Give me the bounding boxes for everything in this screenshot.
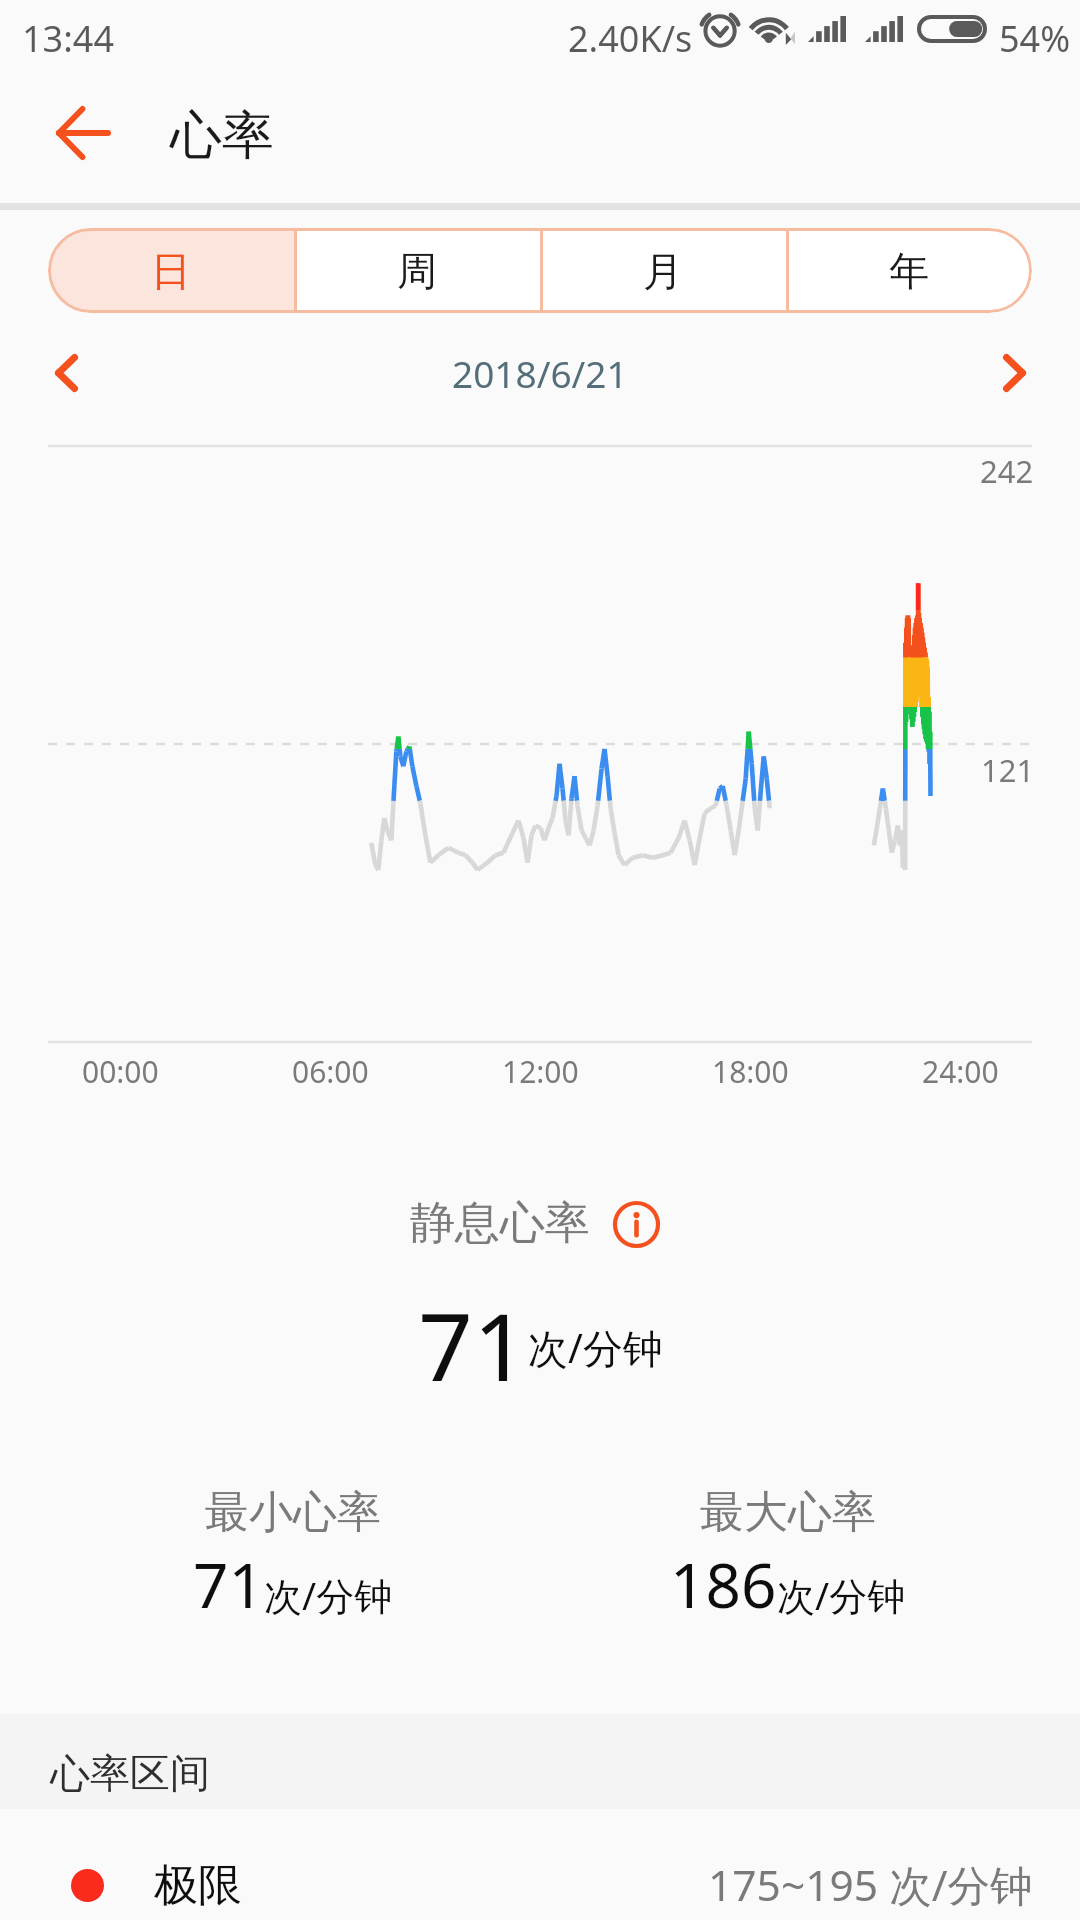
staticText: 最大心率 [700,1485,876,1540]
staticText: 年 [889,246,929,296]
staticText: 心率 [170,103,274,169]
staticText: 06:00 [292,1051,369,1092]
staticText: 次/分钟 [264,1569,393,1621]
staticText: 13:44 [22,14,115,63]
staticText: 最小心率 [205,1485,381,1540]
staticText: 2018/6/21 [452,348,628,398]
button[interactable]: 年 [786,228,1032,313]
staticText: 71 [193,1542,264,1626]
staticText: 月 [643,246,683,296]
staticText: 00:00 [82,1051,159,1092]
button[interactable]: 周 [294,228,540,313]
staticText: 日 [151,246,191,296]
button[interactable]: 月 [540,228,786,313]
staticText: 心率区间 [50,1748,210,1798]
button[interactable]: Previous day [24,331,108,415]
staticText: 2.40K/s [568,14,693,63]
staticText: 24:00 [922,1051,999,1092]
button[interactable]: 日 [48,228,294,313]
staticText: 次/分钟 [528,1320,663,1375]
staticText: 次/分钟 [777,1569,906,1621]
staticText: 18:00 [712,1051,789,1092]
button[interactable]: Back [35,85,131,181]
staticText: 121 [981,749,1035,791]
staticText: 静息心率 [410,1195,590,1252]
staticText: 极限 [154,1858,242,1913]
staticText: 54% [999,14,1071,63]
staticText: 175~195 次/分钟 [708,1856,1033,1914]
staticText: 71 [418,1281,528,1381]
button[interactable]: Info [608,1196,664,1252]
staticText: 242 [980,450,1034,492]
button[interactable]: 极限 [0,1809,1080,1920]
staticText: 周 [397,246,437,296]
staticText: 12:00 [502,1051,579,1092]
button[interactable]: Next day [972,331,1056,415]
staticText: 186 [670,1542,777,1626]
